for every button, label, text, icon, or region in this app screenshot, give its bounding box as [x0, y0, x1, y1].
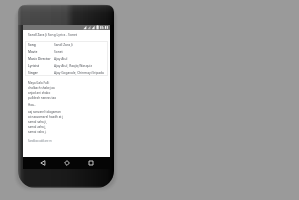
staticText: Sandl Zara Ji Song Lyrics - Sonet	[28, 33, 78, 37]
staticText: Sandl Zara Ji	[54, 43, 73, 47]
staticText: Lyricist	[28, 64, 40, 68]
staticText: Movie	[28, 50, 38, 54]
staticText: Music Director	[28, 57, 51, 61]
button[interactable]: Recent apps	[85, 157, 97, 169]
staticText: Maya Gala Fulli chalbach shabej aa anjad…	[28, 81, 56, 100]
staticText: aaj sanvarel tolagaman at naavamarel hoa…	[28, 110, 63, 134]
staticText: Haa...	[28, 103, 36, 107]
staticText: Sonet	[54, 50, 63, 54]
staticText: Sandbox add are m	[28, 139, 52, 143]
staticText: Ajay Atul, Raajiq Wasquiz	[54, 64, 93, 68]
button[interactable]: Back	[37, 157, 49, 169]
staticText: Ajay Atul	[54, 57, 68, 61]
button[interactable]: Home	[61, 157, 73, 169]
staticText: Singer	[28, 71, 38, 75]
staticText: Song	[28, 43, 36, 47]
staticText: Ajay Gogavale, Chinmayi Sripada	[54, 71, 104, 75]
